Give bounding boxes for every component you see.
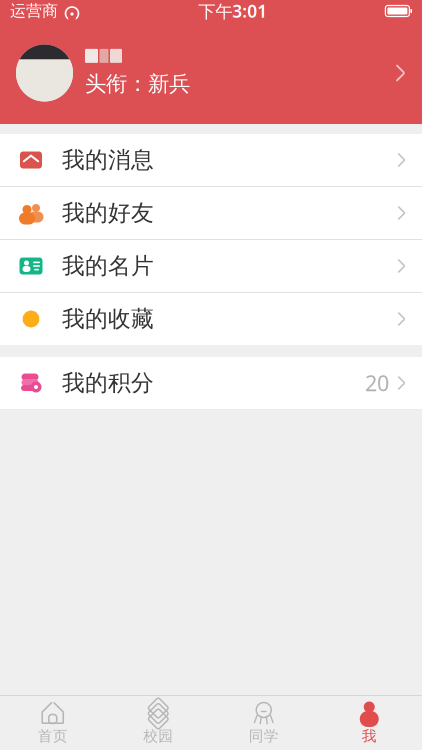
button[interactable]: 同学: [211, 696, 316, 750]
button[interactable]: 我的积分: [0, 357, 422, 409]
staticText: 校园: [143, 727, 173, 745]
staticText: 运营商: [10, 1, 58, 21]
staticText: 下午3:01: [198, 0, 267, 22]
button[interactable]: 头衔：新兵: [0, 22, 422, 124]
staticText: 头衔：新兵: [85, 71, 190, 97]
staticText: 我的消息: [62, 146, 154, 174]
staticText: 我: [362, 727, 377, 745]
staticText: 首页: [38, 727, 68, 745]
button[interactable]: 我的消息: [0, 134, 422, 186]
button[interactable]: 我的收藏: [0, 293, 422, 345]
button[interactable]: 我的名片: [0, 240, 422, 292]
button[interactable]: 我的好友: [0, 187, 422, 239]
button[interactable]: 我: [316, 696, 422, 750]
staticText: 我的积分: [62, 369, 154, 397]
button[interactable]: 首页: [0, 696, 105, 750]
staticText: 我的收藏: [62, 305, 154, 333]
button[interactable]: 校园: [105, 696, 211, 750]
staticText: 我的名片: [62, 252, 154, 280]
staticText: 同学: [249, 727, 279, 745]
staticText: 20: [365, 369, 389, 397]
staticText: 我的好友: [62, 199, 154, 227]
